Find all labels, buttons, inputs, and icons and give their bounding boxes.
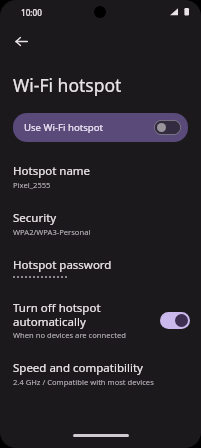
staticText: Wi-Fi hotspot bbox=[13, 73, 122, 97]
staticText: 2.4 GHz / Compatible with most devices bbox=[13, 377, 154, 387]
staticText: Security bbox=[13, 210, 57, 226]
staticText: Use Wi-Fi hotspot bbox=[24, 121, 154, 134]
staticText: Pixel_2555 bbox=[13, 180, 51, 190]
staticText: When no devices are connected bbox=[13, 330, 126, 340]
staticText: Turn off hotspot automatically bbox=[13, 300, 154, 329]
button[interactable]: Hotspot password bbox=[0, 250, 201, 287]
button[interactable]: Use Wi-Fi hotspot toggle bbox=[154, 120, 181, 135]
button[interactable]: Use Wi-Fi hotspot bbox=[13, 113, 188, 142]
button[interactable]: Turn off hotspot automatically toggle bbox=[160, 312, 190, 329]
button[interactable]: Speed and compatibility bbox=[0, 353, 201, 394]
staticText: Hotspot password bbox=[13, 257, 112, 273]
button[interactable]: Back bbox=[4, 24, 38, 58]
button[interactable]: Hotspot name bbox=[0, 156, 201, 197]
staticText: Speed and compatibility bbox=[13, 360, 143, 376]
button[interactable]: Turn off hotspot automatically bbox=[0, 293, 201, 347]
button[interactable]: Security bbox=[0, 203, 201, 244]
staticText: 10:00 bbox=[21, 7, 42, 18]
staticText: Hotspot name bbox=[13, 163, 91, 179]
staticText: WPA2/WPA3-Personal bbox=[13, 227, 91, 237]
